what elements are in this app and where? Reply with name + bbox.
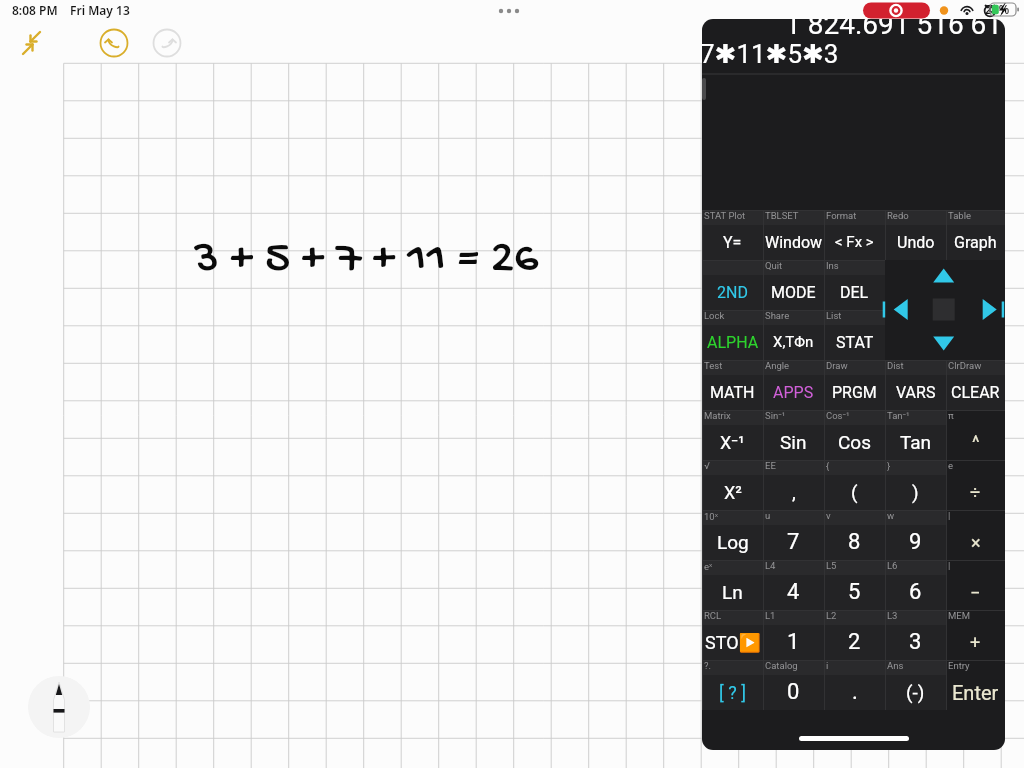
button[interactable]: √: [702, 460, 763, 510]
staticText: 7✱11✱5✱3: [702, 39, 839, 69]
staticText: Tan⁻¹: [887, 410, 910, 421]
staticText: X²: [724, 482, 742, 503]
staticText: Graph: [954, 233, 997, 252]
button[interactable]: Cos⁻¹: [824, 410, 885, 460]
button[interactable]: e: [946, 460, 1005, 510]
button[interactable]: v: [824, 510, 885, 560]
button[interactable]: Ans: [885, 660, 946, 710]
staticText: MEM: [948, 610, 970, 621]
button[interactable]: Test: [702, 360, 763, 410]
staticText: Dist: [887, 360, 904, 371]
staticText: L3: [887, 610, 898, 621]
button[interactable]: Lock: [702, 310, 763, 360]
staticText: 7: [787, 529, 800, 555]
staticText: DEL: [840, 283, 869, 302]
staticText: 5: [848, 579, 861, 605]
button[interactable]: ?.: [702, 660, 763, 710]
button[interactable]: Pen tool: [28, 676, 90, 738]
button[interactable]: }: [885, 460, 946, 510]
staticText: Ans: [887, 660, 904, 671]
button[interactable]: Collapse: [16, 27, 48, 59]
button[interactable]: L3: [885, 610, 946, 660]
button[interactable]: Catalog: [763, 660, 824, 710]
staticText: 9: [909, 529, 922, 555]
staticText: MATH: [710, 383, 755, 402]
button[interactable]: MEM: [946, 610, 1005, 660]
button[interactable]: 2ND: [702, 260, 763, 310]
button[interactable]: eˣ: [702, 560, 763, 610]
button[interactable]: ClrDraw: [946, 360, 1005, 410]
staticText: Ins: [826, 260, 839, 271]
button[interactable]: L2: [824, 610, 885, 660]
staticText: Catalog: [765, 660, 798, 671]
staticText: v: [826, 510, 831, 521]
staticText: X⁻¹: [720, 432, 745, 453]
button[interactable]: Sin⁻¹: [763, 410, 824, 460]
staticText: i: [826, 660, 829, 671]
button[interactable]: 10ˣ: [702, 510, 763, 560]
staticText: Quit: [765, 260, 783, 271]
button[interactable]: Quit: [763, 260, 824, 310]
button[interactable]: Table: [946, 210, 1005, 260]
button[interactable]: {: [824, 460, 885, 510]
button[interactable]: TBLSET: [763, 210, 824, 260]
staticText: {: [826, 460, 830, 471]
button[interactable]: Entry: [946, 660, 1005, 710]
staticText: Draw: [826, 360, 848, 371]
staticText: 2: [848, 629, 861, 655]
staticText: TBLSET: [765, 210, 799, 221]
staticText: CLEAR: [951, 383, 1000, 402]
button[interactable]: Tan⁻¹: [885, 410, 946, 460]
staticText: 4: [787, 579, 800, 605]
button[interactable]: EE: [763, 460, 824, 510]
staticText: |: [948, 560, 951, 571]
button[interactable]: RCL: [702, 610, 763, 660]
staticText: ClrDraw: [948, 360, 982, 371]
button[interactable]: [885, 310, 946, 360]
button[interactable]: Redo: [152, 28, 182, 58]
button[interactable]: L4: [763, 560, 824, 610]
staticText: 6: [909, 579, 922, 605]
button[interactable]: Dist: [885, 360, 946, 410]
button[interactable]: u: [763, 510, 824, 560]
button[interactable]: i: [824, 660, 885, 710]
staticText: APPS: [773, 383, 814, 402]
button[interactable]: |: [946, 560, 1005, 610]
button[interactable]: [946, 260, 1005, 310]
button[interactable]: Draw: [824, 360, 885, 410]
staticText: −: [970, 582, 981, 603]
button[interactable]: L1: [763, 610, 824, 660]
button[interactable]: π: [946, 410, 1005, 460]
staticText: .: [852, 679, 858, 705]
button[interactable]: Ins: [824, 260, 885, 310]
button[interactable]: Format: [824, 210, 885, 260]
staticText: 3 + 5 + 7 + 11 = 26: [194, 232, 539, 289]
button[interactable]: Redo: [885, 210, 946, 260]
staticText: VARS: [896, 383, 936, 402]
staticText: ,: [792, 481, 796, 503]
button[interactable]: L5: [824, 560, 885, 610]
staticText: Share: [765, 310, 790, 321]
button[interactable]: [885, 260, 946, 310]
staticText: w: [887, 510, 895, 521]
button[interactable]: L6: [885, 560, 946, 610]
button[interactable]: STAT Plot: [702, 210, 763, 260]
button[interactable]: Share: [763, 310, 824, 360]
button[interactable]: Matrix: [702, 410, 763, 460]
staticText: STAT: [836, 333, 874, 352]
button[interactable]: [946, 310, 1005, 360]
staticText: ): [912, 481, 919, 503]
staticText: Enter: [952, 681, 999, 704]
button[interactable]: Angle: [763, 360, 824, 410]
staticText: 8:08 PM: [12, 2, 58, 18]
button[interactable]: |: [946, 510, 1005, 560]
staticText: X,TΦn: [773, 333, 814, 351]
staticText: L6: [887, 560, 898, 571]
staticText: ÷: [970, 482, 981, 503]
staticText: RCL: [704, 610, 722, 621]
button[interactable]: Undo: [99, 28, 129, 58]
button[interactable]: List: [824, 310, 885, 360]
button[interactable]: w: [885, 510, 946, 560]
staticText: Table: [948, 210, 971, 221]
staticText: 0: [787, 679, 800, 705]
